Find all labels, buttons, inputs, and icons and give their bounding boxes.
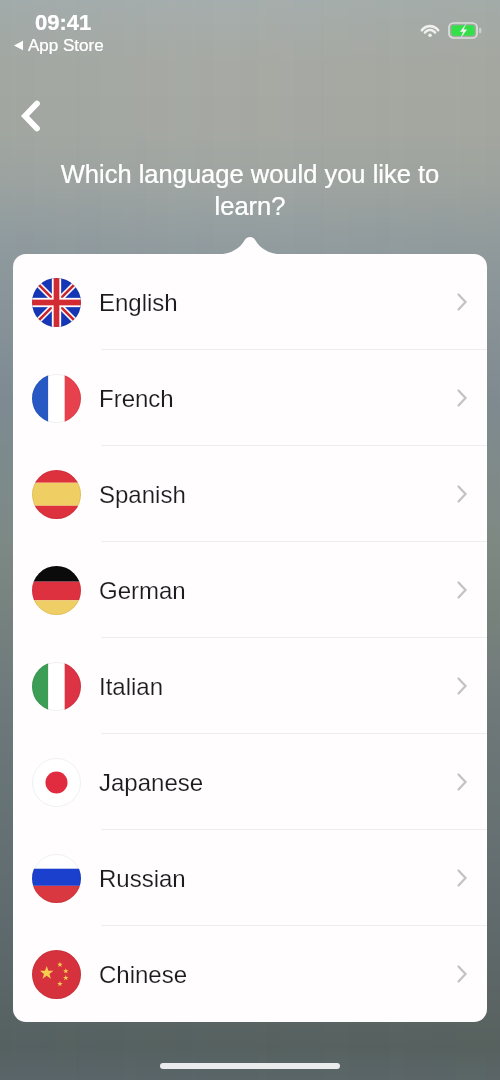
button[interactable]: English xyxy=(13,254,487,350)
button[interactable]: German xyxy=(13,542,487,638)
staticText: App Store xyxy=(28,36,104,55)
staticText: Italian xyxy=(99,673,164,700)
button[interactable]: Chinese xyxy=(13,926,487,1022)
staticText: French xyxy=(99,385,174,412)
staticText: German xyxy=(99,577,186,604)
staticText: Japanese xyxy=(99,769,204,796)
button[interactable]: Japanese xyxy=(13,734,487,830)
button[interactable]: Back xyxy=(7,92,52,137)
staticText: 09:41 xyxy=(35,10,92,35)
staticText: Spanish xyxy=(99,481,186,508)
button[interactable]: Spanish xyxy=(13,446,487,542)
staticText: English xyxy=(99,289,178,316)
staticText: Chinese xyxy=(99,961,188,988)
button[interactable]: French xyxy=(13,350,487,446)
button[interactable]: Italian xyxy=(13,638,487,734)
button[interactable]: Russian xyxy=(13,830,487,926)
staticText: Russian xyxy=(99,865,186,892)
staticText: Which language would you like to learn? xyxy=(48,160,452,220)
